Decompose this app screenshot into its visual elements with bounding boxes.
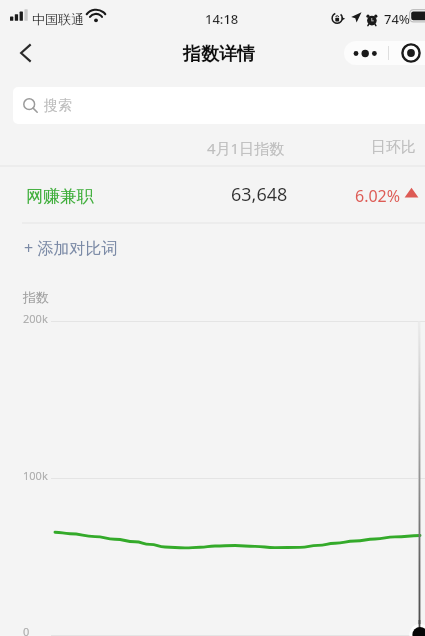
staticText: 0	[23, 624, 30, 636]
button[interactable]: 搜索	[13, 87, 425, 124]
staticText: 63,648	[231, 182, 288, 207]
staticText: 14:18	[205, 10, 239, 28]
staticText: 74%	[384, 10, 410, 28]
button[interactable]: More	[344, 41, 388, 65]
button[interactable]: Back	[4, 30, 46, 76]
staticText: 指数详情	[183, 43, 255, 66]
button[interactable]: 网赚兼职	[0, 167, 425, 224]
staticText: 200k	[23, 311, 48, 326]
staticText: 4月1日指数	[207, 138, 285, 158]
staticText: 网赚兼职	[26, 186, 94, 207]
button[interactable]: + 添加对比词	[0, 224, 425, 272]
staticText: 搜索	[44, 97, 72, 115]
button[interactable]: Close	[390, 41, 425, 65]
staticText: 日环比	[371, 138, 416, 157]
staticText: + 添加对比词	[24, 237, 118, 259]
staticText: 指数	[23, 289, 49, 305]
staticText: 6.02%	[355, 185, 401, 207]
staticText: 中国联通	[32, 11, 84, 27]
staticText: 100k	[23, 468, 48, 483]
